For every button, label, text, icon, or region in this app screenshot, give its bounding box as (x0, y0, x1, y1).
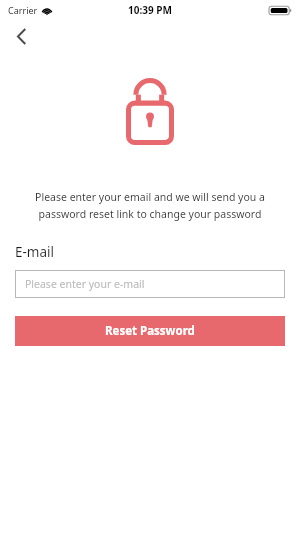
button[interactable]: Please enter your e-mail (15, 270, 285, 298)
staticText: E-mail (15, 243, 55, 261)
staticText: Please enter your email and we will send… (14, 190, 286, 221)
staticText: 10:39 PM (128, 3, 172, 17)
staticText: Reset Password (105, 323, 195, 339)
button[interactable]: Reset Password (15, 316, 285, 346)
staticText: Please enter your e-mail (25, 277, 145, 291)
button[interactable]: Back (6, 21, 36, 51)
staticText: Carrier (8, 4, 38, 16)
